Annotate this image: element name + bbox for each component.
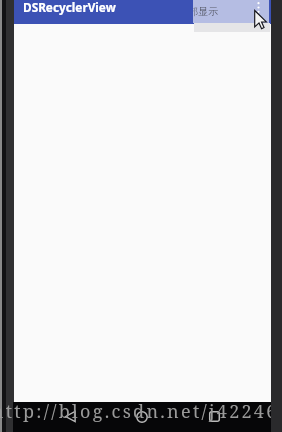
button[interactable]: More options xyxy=(245,0,271,24)
button[interactable]: Back xyxy=(57,403,84,430)
staticText: http://blog.csdn.net/j422468 xyxy=(0,399,274,424)
button[interactable]: Recents xyxy=(201,403,228,430)
staticText: DSRecyclerView xyxy=(23,0,116,15)
staticText: 部显示 xyxy=(193,5,218,18)
button[interactable]: 部显示 xyxy=(193,0,269,23)
button[interactable]: Home xyxy=(128,403,155,430)
